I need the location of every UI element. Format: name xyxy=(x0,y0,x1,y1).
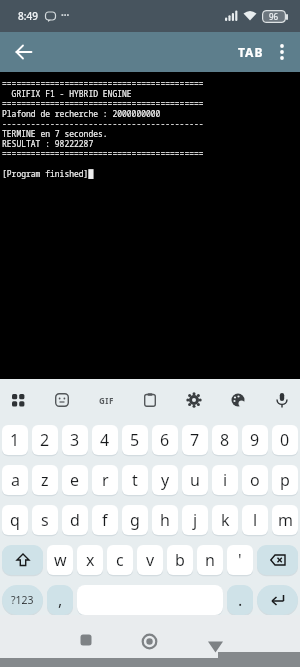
button[interactable]: 7 xyxy=(182,425,208,455)
staticText: x xyxy=(86,549,95,571)
staticText: g xyxy=(130,509,140,531)
staticText: h xyxy=(160,509,170,531)
button[interactable]: s xyxy=(32,505,58,535)
staticText: . xyxy=(238,589,243,611)
button[interactable]: f xyxy=(92,505,118,535)
button[interactable]: n xyxy=(197,545,223,575)
staticText: l xyxy=(253,509,258,531)
button[interactable]: , xyxy=(47,585,73,615)
button[interactable]: 1 xyxy=(2,425,28,455)
button[interactable]: ' xyxy=(227,545,253,575)
staticText: b xyxy=(175,549,185,571)
button[interactable]: d xyxy=(62,505,88,535)
button[interactable]: ?123 xyxy=(2,585,43,615)
staticText: w xyxy=(54,549,67,571)
staticText: u xyxy=(190,469,200,491)
staticText: n xyxy=(205,549,215,571)
staticText: TAB xyxy=(238,44,264,60)
button[interactable]: w xyxy=(47,545,73,575)
button[interactable]: 6 xyxy=(152,425,178,455)
staticText: ========================================… xyxy=(2,78,204,179)
staticText: 96 xyxy=(269,11,279,22)
button[interactable] xyxy=(200,615,300,667)
staticText: m xyxy=(278,509,293,531)
staticText: z xyxy=(41,469,49,491)
button[interactable] xyxy=(6,388,30,412)
staticText: o xyxy=(250,469,260,491)
staticText: f xyxy=(102,509,108,531)
button[interactable]: t xyxy=(122,465,148,495)
staticText: 4 xyxy=(100,429,110,451)
button[interactable]: 9 xyxy=(242,425,268,455)
staticText: s xyxy=(41,509,49,531)
staticText: GIF xyxy=(99,395,114,406)
button[interactable] xyxy=(182,388,206,412)
button[interactable] xyxy=(226,388,250,412)
button[interactable]: 3 xyxy=(62,425,88,455)
button[interactable]: y xyxy=(152,465,178,495)
button[interactable]: i xyxy=(212,465,238,495)
button[interactable]: GIF xyxy=(94,388,118,412)
button[interactable]: m xyxy=(272,505,298,535)
button[interactable]: u xyxy=(182,465,208,495)
staticText: j xyxy=(193,509,198,531)
staticText: 2 xyxy=(40,429,50,451)
button[interactable] xyxy=(138,388,162,412)
button[interactable]: 0 xyxy=(272,425,298,455)
staticText: 8:49 xyxy=(18,9,38,23)
staticText: y xyxy=(161,469,170,491)
button[interactable]: . xyxy=(227,585,253,615)
button[interactable]: 4 xyxy=(92,425,118,455)
staticText: ' xyxy=(238,549,242,571)
staticText: a xyxy=(11,469,20,491)
button[interactable]: TAB xyxy=(238,32,264,72)
staticText: 8 xyxy=(220,429,230,451)
button[interactable]: g xyxy=(122,505,148,535)
staticText: p xyxy=(280,469,290,491)
button[interactable] xyxy=(0,32,48,72)
staticText: i xyxy=(223,469,228,491)
staticText: ... xyxy=(61,5,70,19)
button[interactable]: k xyxy=(212,505,238,535)
button[interactable]: h xyxy=(152,505,178,535)
staticText: 3 xyxy=(70,429,80,451)
staticText: k xyxy=(221,509,230,531)
staticText: q xyxy=(10,509,20,531)
staticText: 5 xyxy=(130,429,140,451)
button[interactable]: e xyxy=(62,465,88,495)
staticText: 0 xyxy=(280,429,290,451)
button[interactable] xyxy=(0,615,100,667)
button[interactable]: x xyxy=(77,545,103,575)
button[interactable]: q xyxy=(2,505,28,535)
staticText: , xyxy=(58,589,63,611)
button[interactable]: j xyxy=(182,505,208,535)
button[interactable] xyxy=(50,388,74,412)
button[interactable]: a xyxy=(2,465,28,495)
button[interactable]: o xyxy=(242,465,268,495)
button[interactable]: 5 xyxy=(122,425,148,455)
button[interactable] xyxy=(270,388,294,412)
button[interactable]: v xyxy=(137,545,163,575)
button[interactable]: z xyxy=(32,465,58,495)
button[interactable] xyxy=(257,545,298,575)
button[interactable] xyxy=(264,32,300,72)
staticText: r xyxy=(102,469,109,491)
button[interactable]: l xyxy=(242,505,268,535)
button[interactable] xyxy=(100,615,200,667)
button[interactable]: p xyxy=(272,465,298,495)
staticText: e xyxy=(70,469,80,491)
button[interactable]: b xyxy=(167,545,193,575)
button[interactable] xyxy=(2,545,43,575)
staticText: ?123 xyxy=(11,593,34,607)
staticText: t xyxy=(132,469,138,491)
staticText: 6 xyxy=(160,429,170,451)
button[interactable] xyxy=(257,585,298,615)
button[interactable]: c xyxy=(107,545,133,575)
button[interactable]: 8 xyxy=(212,425,238,455)
staticText: 9 xyxy=(250,429,260,451)
button[interactable]: r xyxy=(92,465,118,495)
staticText: v xyxy=(146,549,155,571)
button[interactable]: 2 xyxy=(32,425,58,455)
